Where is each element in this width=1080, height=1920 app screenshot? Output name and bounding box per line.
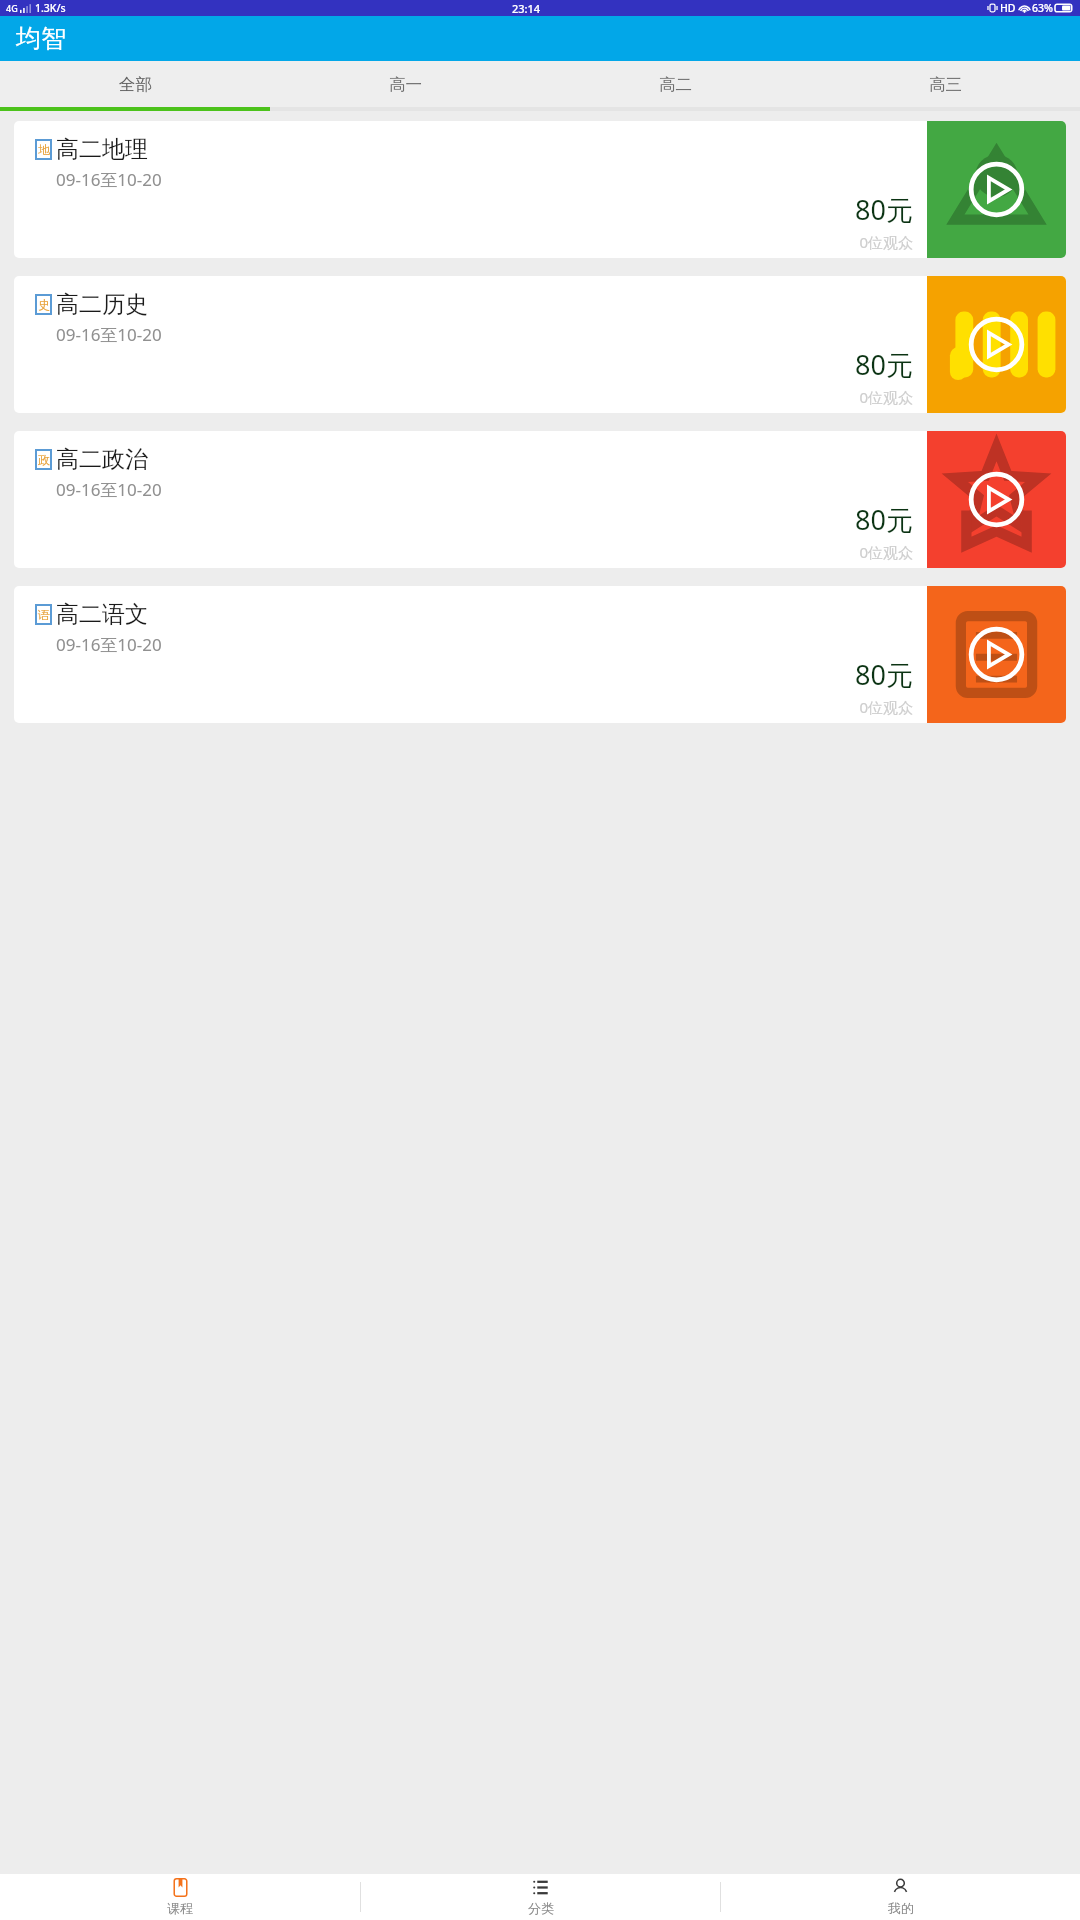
staticText: 0位观众	[36, 697, 913, 717]
staticText: 0位观众	[36, 232, 913, 252]
button[interactable]: 高二	[540, 61, 810, 107]
staticText: 语	[38, 607, 50, 622]
staticText: 0位观众	[36, 542, 913, 562]
button[interactable]: 分类	[361, 1874, 720, 1920]
staticText: 均智	[16, 23, 66, 54]
button[interactable]: 高三	[810, 61, 1080, 107]
staticText: HD	[1000, 1, 1016, 15]
staticText: 高二历史	[56, 290, 148, 319]
other: 我的	[891, 1878, 910, 1897]
staticText: 63%	[1032, 1, 1053, 15]
staticText: 4G	[6, 2, 18, 14]
staticText: 80元	[36, 656, 913, 693]
other: 分类	[531, 1878, 550, 1897]
staticText: 09-16至10-20	[56, 478, 162, 501]
button[interactable]: 我的	[721, 1874, 1080, 1920]
staticText: 地	[38, 142, 50, 157]
staticText: 高二语文	[56, 600, 148, 629]
staticText: 1.3K/s	[35, 1, 66, 15]
staticText: 史	[38, 297, 50, 312]
button[interactable]: 政	[14, 431, 1066, 568]
button[interactable]: 全部	[0, 61, 270, 107]
staticText: 高二	[659, 74, 692, 95]
staticText: 23:14	[512, 1, 541, 16]
button[interactable]: 课程	[0, 1874, 360, 1920]
button[interactable]: 地	[14, 121, 1066, 258]
staticText: 高三	[929, 74, 962, 95]
staticText: 80元	[36, 501, 913, 538]
button[interactable]: 高一	[270, 61, 540, 107]
staticText: 09-16至10-20	[56, 168, 162, 191]
staticText: 课程	[167, 1900, 193, 1916]
other: 课程	[171, 1878, 190, 1897]
staticText: 80元	[36, 191, 913, 228]
staticText: 0位观众	[36, 387, 913, 407]
button[interactable]: 史	[14, 276, 1066, 413]
staticText: 高一	[389, 74, 422, 95]
staticText: 全部	[119, 74, 152, 95]
staticText: 高二政治	[56, 445, 148, 474]
button[interactable]: 语	[14, 586, 1066, 723]
staticText: 高二地理	[56, 135, 148, 164]
staticText: 09-16至10-20	[56, 323, 162, 346]
staticText: 政	[38, 452, 50, 467]
staticText: 我的	[888, 1900, 914, 1916]
staticText: 09-16至10-20	[56, 633, 162, 656]
staticText: 分类	[528, 1900, 554, 1916]
staticText: 80元	[36, 346, 913, 383]
